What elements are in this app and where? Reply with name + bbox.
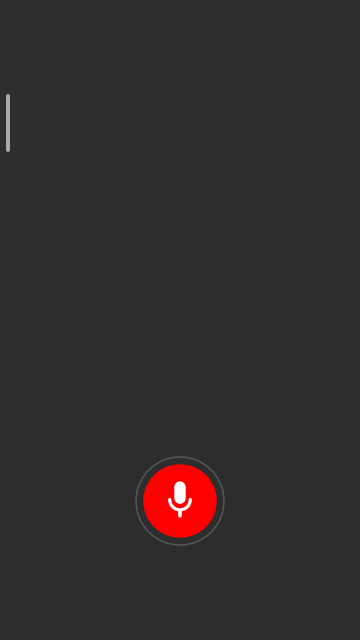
button[interactable]: Record (136, 457, 224, 545)
